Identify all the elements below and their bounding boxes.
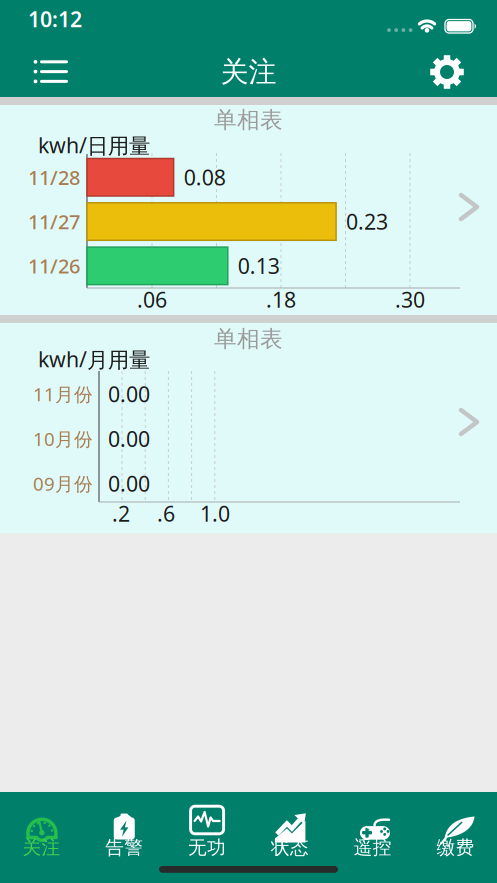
staticText: 10:12 [28, 5, 82, 33]
button[interactable]: 关注 [0, 792, 82, 872]
button[interactable]: Settings [425, 50, 469, 94]
button[interactable]: 单相表 [0, 323, 497, 533]
staticText: 单相表 [214, 106, 283, 134]
staticText: 09月份 [33, 471, 93, 496]
button[interactable]: 单相表 [0, 105, 497, 315]
staticText: 10月份 [33, 426, 93, 451]
button[interactable]: 告警 [83, 792, 165, 872]
staticText: 单相表 [214, 325, 283, 353]
staticText: 状态 [271, 836, 309, 859]
staticText: 无功 [188, 836, 226, 859]
staticText: .6 [157, 499, 175, 528]
staticText: .30 [395, 285, 425, 314]
staticText: 11/27 [28, 208, 80, 235]
staticText: 缴费 [437, 836, 475, 859]
staticText: 关注 [220, 55, 276, 89]
staticText: .18 [266, 285, 296, 314]
staticText: .2 [112, 499, 130, 528]
button[interactable]: 遥控 [332, 792, 414, 872]
staticText: 11/26 [28, 252, 80, 279]
staticText: 关注 [22, 836, 60, 859]
staticText: 告警 [105, 836, 143, 859]
staticText: kwh/日用量 [38, 131, 150, 159]
button[interactable]: 无功 [166, 792, 248, 872]
staticText: 0.23 [346, 207, 388, 236]
button[interactable]: 缴费 [415, 792, 497, 872]
staticText: 1.0 [200, 499, 230, 528]
staticText: 0.13 [238, 252, 280, 280]
staticText: 11月份 [33, 382, 93, 406]
staticText: 11/28 [28, 164, 80, 190]
staticText: .06 [137, 285, 167, 314]
button[interactable]: Menu [24, 49, 76, 93]
staticText: kwh/月用量 [38, 345, 150, 373]
button[interactable]: 状态 [249, 792, 331, 872]
staticText: 0.00 [108, 469, 150, 497]
staticText: 0.08 [184, 163, 226, 191]
staticText: 遥控 [354, 836, 392, 859]
staticText: 0.00 [108, 424, 150, 453]
staticText: 0.00 [108, 380, 150, 408]
